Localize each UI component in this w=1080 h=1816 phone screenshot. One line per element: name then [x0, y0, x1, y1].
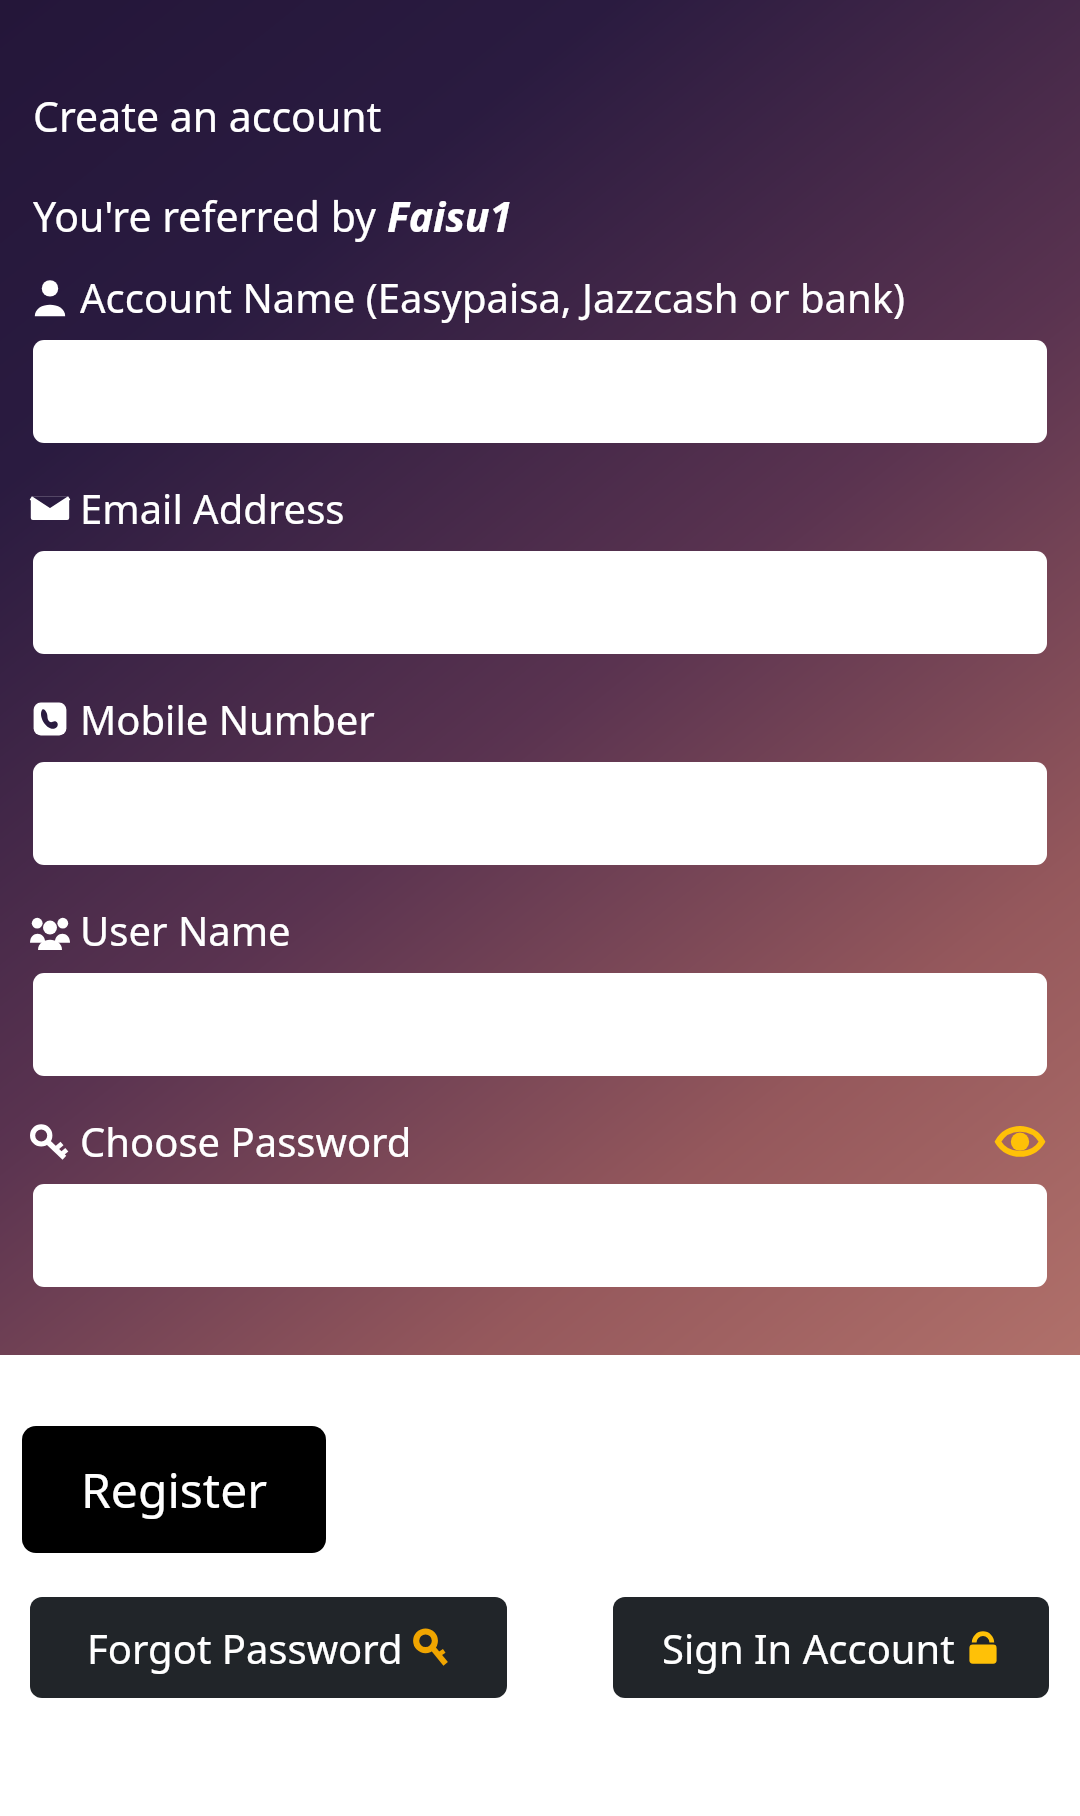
button[interactable]: Register: [22, 1426, 326, 1553]
staticText: Mobile Number: [80, 692, 375, 746]
button[interactable]: [33, 551, 1047, 654]
button[interactable]: [33, 762, 1047, 865]
button[interactable]: Show password: [993, 1119, 1047, 1163]
staticText: Register: [81, 1457, 268, 1522]
staticText: Choose Password: [80, 1114, 412, 1168]
staticText: Create an account: [33, 88, 382, 144]
staticText: Sign In Account: [662, 1621, 966, 1675]
staticText: Faisu1: [387, 188, 513, 244]
staticText: Email Address: [80, 481, 345, 535]
button[interactable]: Sign In Account: [613, 1597, 1049, 1698]
staticText: Forgot Password: [87, 1621, 414, 1675]
button[interactable]: [33, 340, 1047, 443]
staticText: User Name: [80, 903, 291, 957]
button[interactable]: [33, 973, 1047, 1076]
button[interactable]: Forgot Password: [30, 1597, 507, 1698]
staticText: Account Name (Easypaisa, Jazzcash or ban…: [80, 270, 906, 324]
staticText: You're referred by: [33, 188, 387, 244]
button[interactable]: [33, 1184, 1047, 1287]
